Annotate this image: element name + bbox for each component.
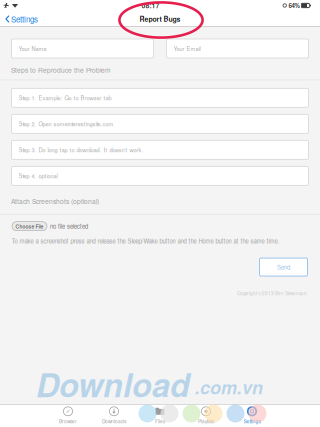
staticText: Files <box>155 418 165 425</box>
staticText: Playlists <box>198 418 214 425</box>
staticText: Choose File <box>15 223 43 230</box>
staticText: Copyright © 2013 Ben Stevenson <box>237 290 307 297</box>
button[interactable]: Browser <box>45 404 91 427</box>
button[interactable]: Settings <box>0 11 38 27</box>
staticText: Step 1. Example: Go to Browser tab <box>18 94 111 102</box>
staticText: Step 3. Do long tap to download. It does… <box>18 146 143 154</box>
button[interactable]: Step 1. Example: Go to Browser tab <box>11 88 308 107</box>
button[interactable]: Choose File <box>12 222 47 231</box>
staticText: Settings <box>11 13 38 25</box>
staticText: .com.vn <box>195 374 263 400</box>
button[interactable]: Files <box>137 404 183 427</box>
staticText: 08:17 <box>142 0 160 10</box>
button[interactable]: Send <box>259 258 307 276</box>
button[interactable]: Settings <box>229 404 275 427</box>
button[interactable]: Step 3. Do long tap to download. It does… <box>11 140 308 159</box>
button[interactable]: Step 4. optional <box>11 166 308 185</box>
staticText: Downloads <box>102 418 126 425</box>
button[interactable]: Step 2. Open someinterestingsite.com <box>11 114 308 133</box>
staticText: Send <box>277 263 290 271</box>
staticText: 64% <box>288 1 299 10</box>
staticText: Step 4. optional <box>18 172 57 180</box>
staticText: Attach Screenshots (optional) <box>11 196 99 206</box>
staticText: Your Email <box>173 44 200 52</box>
button[interactable]: Downloads <box>91 404 137 427</box>
button[interactable]: Playlists <box>183 404 229 427</box>
staticText: no file selected <box>50 222 88 230</box>
staticText: Browser <box>59 418 77 425</box>
staticText: Download <box>36 361 190 407</box>
staticText: Settings <box>243 418 260 425</box>
staticText: Report Bugs <box>139 14 180 24</box>
staticText: Steps to Reproduce the Problem <box>11 65 111 74</box>
button[interactable]: Your Name <box>11 39 153 58</box>
staticText: Step 2. Open someinterestingsite.com <box>18 120 113 128</box>
staticText: To make a screenshot press and release t… <box>11 237 279 245</box>
staticText: Your Name <box>18 44 46 52</box>
button[interactable]: Your Email <box>166 39 308 58</box>
